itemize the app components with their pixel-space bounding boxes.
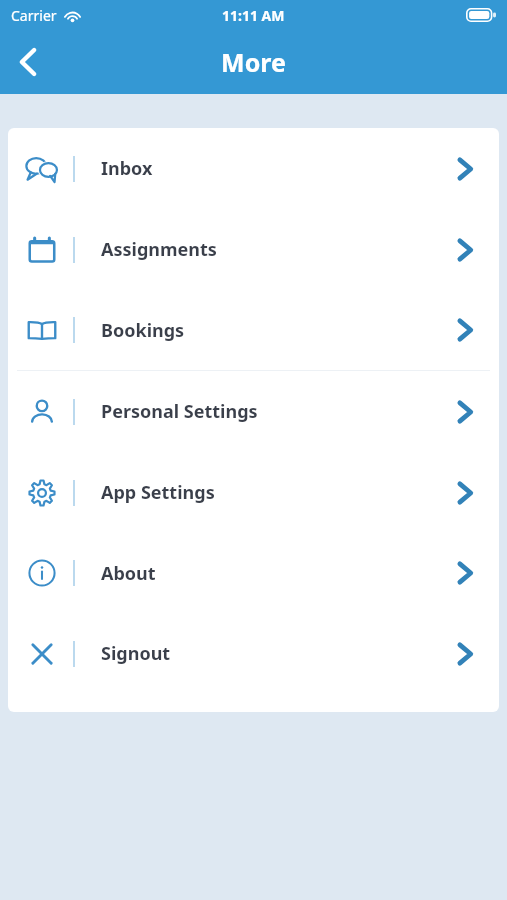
staticText: 11:11 AM xyxy=(222,6,285,25)
button[interactable]: Bookings xyxy=(8,290,499,370)
staticText: Assignments xyxy=(101,237,217,262)
staticText: Signout xyxy=(101,641,171,666)
staticText: About xyxy=(101,561,156,586)
button[interactable]: Signout xyxy=(8,613,499,694)
button[interactable]: Personal Settings xyxy=(8,371,499,452)
button[interactable]: App Settings xyxy=(8,452,499,533)
staticText: Bookings xyxy=(101,318,185,343)
staticText: Inbox xyxy=(101,156,153,181)
button[interactable]: Inbox xyxy=(8,128,499,209)
button[interactable]: About xyxy=(8,533,499,613)
staticText: Carrier xyxy=(11,6,57,25)
staticText: App Settings xyxy=(101,480,215,505)
button[interactable]: Assignments xyxy=(8,209,499,290)
button[interactable]: Back xyxy=(0,34,56,90)
staticText: More xyxy=(221,45,286,79)
staticText: Personal Settings xyxy=(101,399,258,424)
